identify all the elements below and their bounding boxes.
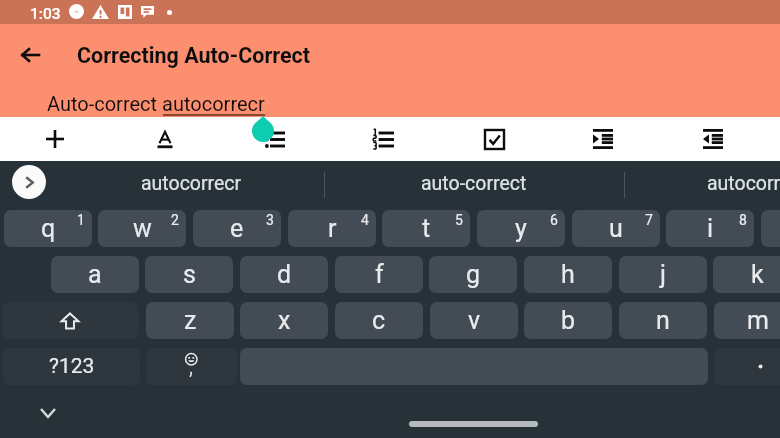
button[interactable]: x xyxy=(240,302,328,339)
button[interactable]: h xyxy=(524,256,612,293)
staticText: 7 xyxy=(645,212,653,228)
staticText: 1 xyxy=(77,212,85,228)
staticText: h xyxy=(561,260,575,289)
staticText: f xyxy=(375,260,384,289)
button[interactable]: d xyxy=(240,256,328,293)
staticText: t xyxy=(422,214,431,243)
button[interactable]: k xyxy=(713,256,780,293)
button[interactable]: r xyxy=(288,210,376,247)
button[interactable]: f xyxy=(335,256,423,293)
button[interactable]: b xyxy=(524,302,612,339)
staticText: z xyxy=(184,306,197,335)
button[interactable]: More suggestions xyxy=(12,165,46,199)
staticText: auto-correct xyxy=(421,172,527,195)
button[interactable]: q xyxy=(4,210,92,247)
button[interactable]: i xyxy=(666,210,754,247)
button[interactable]: Increase indent xyxy=(581,117,625,161)
button[interactable]: autocorrecr xyxy=(58,161,324,208)
button[interactable]: e xyxy=(193,210,281,247)
button[interactable]: o xyxy=(761,210,780,247)
button[interactable]: v xyxy=(430,302,518,339)
staticText: d xyxy=(277,260,292,289)
button[interactable]: a xyxy=(51,256,139,293)
button[interactable]: Hide keyboard xyxy=(35,400,61,426)
staticText: q xyxy=(41,214,56,243)
staticText: s xyxy=(183,260,196,289)
staticText: Auto-correct autocorrecr xyxy=(47,92,265,115)
staticText: y xyxy=(515,214,527,243)
staticText: g xyxy=(466,260,481,289)
staticText: autocorrecr xyxy=(141,172,242,195)
staticText: i xyxy=(707,214,714,243)
staticText: 5 xyxy=(455,212,463,228)
staticText: k xyxy=(751,260,764,289)
staticText: a xyxy=(88,260,102,289)
button[interactable]: w xyxy=(98,210,186,247)
button[interactable]: u xyxy=(572,210,660,247)
button[interactable]: autocorrect xyxy=(624,161,780,208)
button[interactable]: Decrease indent xyxy=(691,117,735,161)
button[interactable]: Back xyxy=(13,38,47,72)
button[interactable]: Bulleted list xyxy=(253,117,297,161)
staticText: v xyxy=(468,306,481,335)
button[interactable]: Text format xyxy=(143,117,187,161)
button[interactable]: m xyxy=(714,302,780,339)
button[interactable]: j xyxy=(619,256,707,293)
button[interactable]: auto-correct xyxy=(324,161,624,208)
staticText: m xyxy=(747,306,769,335)
staticText: 1:03 xyxy=(30,5,61,23)
button[interactable]: shift xyxy=(2,302,138,339)
button[interactable]: t xyxy=(382,210,470,247)
button[interactable]: z xyxy=(146,302,234,339)
staticText: 2 xyxy=(171,212,179,228)
staticText: Correcting Auto-Correct xyxy=(77,43,311,68)
staticText: u xyxy=(609,214,623,243)
button[interactable]: c xyxy=(335,302,423,339)
staticText: b xyxy=(561,306,576,335)
staticText: ?123 xyxy=(49,354,95,379)
button[interactable]: emoji xyxy=(146,348,237,385)
button[interactable]: ?123 xyxy=(3,348,140,385)
staticText: 3 xyxy=(266,212,274,228)
button[interactable]: s xyxy=(145,256,233,293)
staticText: j xyxy=(660,260,666,289)
staticText: 8 xyxy=(739,212,747,228)
button[interactable]: y xyxy=(477,210,565,247)
staticText: x xyxy=(278,306,291,335)
staticText: 4 xyxy=(361,212,369,228)
staticText: r xyxy=(328,214,337,243)
staticText: w xyxy=(133,214,152,243)
button[interactable]: Add xyxy=(33,117,77,161)
button[interactable]: g xyxy=(429,256,517,293)
button[interactable]: . xyxy=(714,348,780,385)
button[interactable]: Numbered list xyxy=(361,117,405,161)
staticText: 6 xyxy=(550,212,558,228)
staticText: e xyxy=(230,214,244,243)
staticText: c xyxy=(372,306,386,335)
button[interactable]: Checklist xyxy=(472,117,516,161)
staticText: n xyxy=(656,306,670,335)
staticText: autocorrect xyxy=(707,172,780,195)
button[interactable]: n xyxy=(619,302,707,339)
